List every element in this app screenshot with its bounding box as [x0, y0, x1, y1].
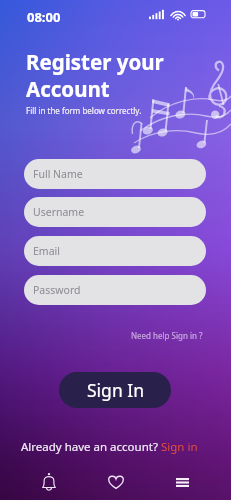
staticText: 08:00 — [27, 8, 61, 26]
button[interactable]: Sign in — [161, 439, 198, 455]
staticText: Fill in the form below correctly. — [26, 105, 142, 116]
staticText: Need help Sign in ? — [131, 330, 203, 341]
button[interactable]: Username — [24, 197, 206, 227]
staticText: Full Name — [33, 167, 83, 181]
staticText: Email — [33, 244, 60, 258]
button[interactable]: Full Name — [24, 159, 206, 189]
staticText: Account — [26, 75, 110, 103]
button[interactable]: Menu — [176, 478, 189, 487]
button[interactable]: Sign In — [59, 372, 171, 408]
staticText: Already have an account? — [21, 439, 161, 455]
staticText: Sign In — [87, 378, 144, 402]
button[interactable]: Password — [24, 275, 206, 305]
button[interactable]: Need help Sign in ? — [129, 329, 205, 342]
staticText: Username — [33, 205, 85, 219]
button[interactable]: Email — [24, 236, 206, 266]
button[interactable]: Notifications — [42, 472, 56, 492]
staticText: Sign in — [161, 439, 198, 455]
staticText: Password — [33, 283, 81, 297]
staticText: Register your — [26, 48, 164, 76]
button[interactable]: Favorites — [108, 475, 124, 489]
